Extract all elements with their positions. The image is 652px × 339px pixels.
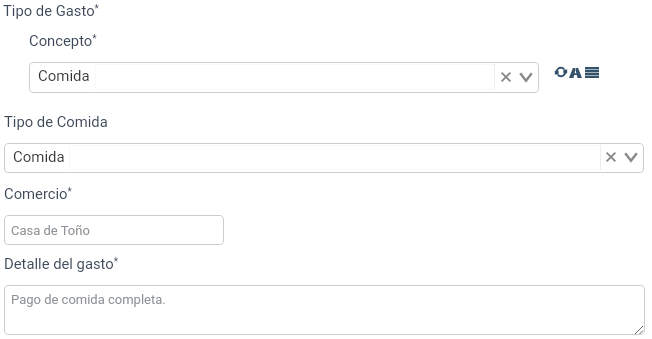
staticText: Comercio* — [4, 185, 72, 202]
button[interactable]: Desplegar — [516, 62, 536, 92]
staticText: Pago de comida completa. — [11, 292, 166, 307]
button[interactable]: Texto — [568, 66, 582, 80]
button[interactable]: Pago de comida completa. — [4, 285, 645, 335]
staticText: Casa de Toño — [11, 223, 90, 238]
button[interactable]: Comida — [29, 62, 539, 93]
button[interactable]: Limpiar — [496, 62, 516, 92]
staticText: Detalle del gasto* — [4, 255, 119, 272]
staticText: Comida — [38, 67, 90, 85]
button[interactable]: Lista — [584, 65, 599, 80]
staticText: Comida — [13, 148, 65, 166]
button[interactable]: Comida — [4, 143, 644, 173]
staticText: Concepto* — [29, 32, 97, 49]
button[interactable]: Refrescar — [554, 65, 568, 79]
staticText: Tipo de Comida — [4, 113, 108, 130]
button[interactable]: Casa de Toño — [4, 215, 224, 245]
button[interactable]: Limpiar — [601, 143, 621, 172]
staticText: Tipo de Gasto* — [3, 2, 99, 19]
button[interactable]: Desplegar — [621, 143, 641, 172]
